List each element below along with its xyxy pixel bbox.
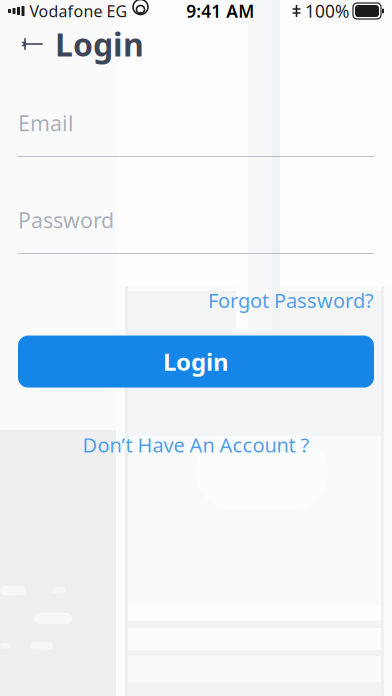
staticText: Password bbox=[18, 206, 114, 234]
staticText: 100% bbox=[305, 0, 349, 22]
staticText: Forgot Password? bbox=[208, 287, 374, 314]
staticText: 9:41 AM bbox=[186, 0, 254, 22]
staticText: Email bbox=[18, 109, 74, 137]
button[interactable]: Don’t Have An Account ? bbox=[74, 426, 317, 464]
staticText: Login bbox=[55, 23, 144, 65]
staticText: Don’t Have An Account ? bbox=[82, 432, 309, 458]
staticText: Vodafone EG bbox=[29, 0, 127, 22]
staticText: Login bbox=[163, 346, 229, 377]
button[interactable]: Login bbox=[18, 336, 374, 388]
button[interactable]: Forgot Password? bbox=[204, 282, 378, 319]
button[interactable]: Back bbox=[11, 24, 55, 64]
